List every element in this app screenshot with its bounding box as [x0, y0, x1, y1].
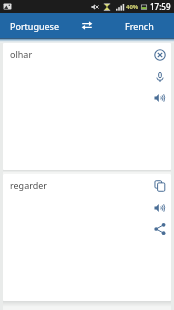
button[interactable]: Listen — [149, 197, 171, 219]
button[interactable]: Portuguese — [0, 13, 69, 38]
other: regarder — [3, 174, 171, 301]
button[interactable]: Clear text — [149, 44, 171, 66]
staticText: olhar — [10, 48, 33, 60]
button[interactable]: French — [105, 13, 174, 38]
button[interactable]: Copy — [149, 175, 171, 197]
staticText: regarder — [10, 179, 48, 191]
staticText: 17:59 — [150, 1, 171, 12]
button[interactable]: Share — [149, 218, 171, 240]
button[interactable]: Listen — [149, 87, 171, 109]
other: olhar — [3, 43, 171, 170]
button[interactable]: Swap languages — [69, 13, 105, 38]
staticText: French — [125, 20, 154, 32]
button[interactable]: Voice input — [149, 66, 171, 88]
staticText: Portuguese — [10, 20, 59, 32]
staticText: 40% — [126, 3, 139, 11]
